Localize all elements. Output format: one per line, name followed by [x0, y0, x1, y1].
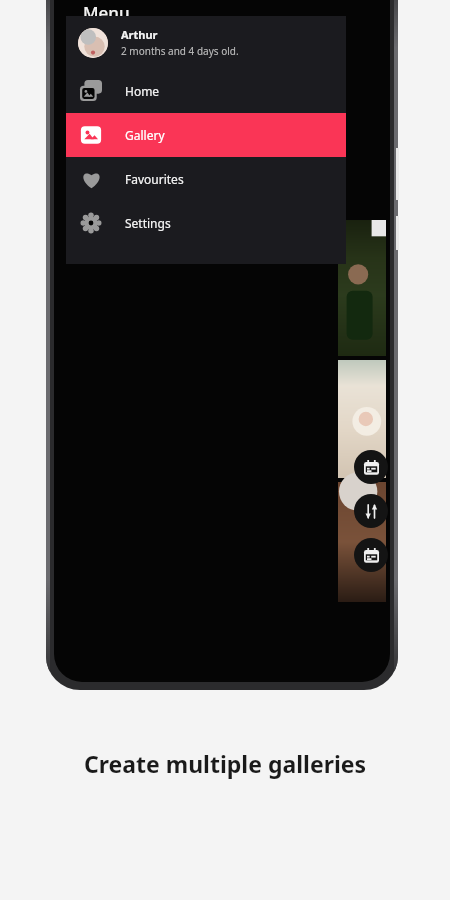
button[interactable] [338, 360, 386, 478]
staticText: Home [125, 83, 160, 99]
button[interactable]: Arthur [66, 16, 346, 69]
button[interactable]: Favourites [66, 157, 346, 201]
staticText: 2 months and 4 days old. [121, 44, 239, 58]
button[interactable]: Calendar [354, 538, 388, 572]
button[interactable] [338, 482, 386, 602]
staticText: Arthur [121, 27, 158, 42]
staticText: Settings [125, 215, 171, 231]
button[interactable]: Home [66, 69, 346, 113]
button[interactable]: Gallery [66, 113, 346, 157]
staticText: Menu [83, 1, 130, 24]
button[interactable]: Settings [66, 201, 346, 245]
staticText: Favourites [125, 171, 184, 187]
button[interactable]: Pick date [354, 450, 388, 484]
staticText: Gallery [125, 127, 165, 143]
button[interactable] [338, 220, 386, 356]
button[interactable]: Sort [354, 494, 388, 528]
staticText: Create multiple galleries [0, 748, 450, 779]
